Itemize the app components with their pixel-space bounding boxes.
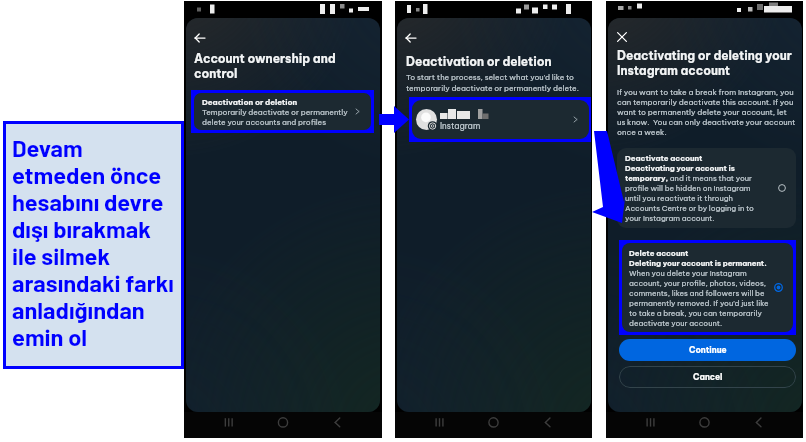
button[interactable]: Delete account	[622, 243, 793, 332]
staticText: Deactivating your account is temporary, …	[625, 163, 757, 225]
staticText: Deactivation or deletion	[406, 54, 552, 69]
staticText: Deleting your account is permanent. When…	[629, 258, 771, 332]
staticText: Continue	[689, 345, 727, 355]
staticText: Delete account	[629, 248, 689, 258]
button[interactable]: Continue	[619, 339, 796, 361]
staticText: Devam etmeden önce hesabını devre dışı b…	[12, 133, 174, 350]
staticText: Temporarily deactivate or permanently de…	[202, 107, 348, 127]
button[interactable]: Cancel	[619, 366, 796, 388]
button[interactable]: Deactivation or deletion	[194, 93, 371, 130]
button[interactable]: Deactivate account	[617, 148, 796, 228]
staticText: Deactivation or deletion	[202, 97, 298, 107]
staticText: Instagram	[440, 121, 481, 131]
other: Close	[616, 31, 628, 43]
staticText: To start the process, select what you'd …	[406, 72, 579, 93]
other: Back	[194, 32, 206, 44]
staticText: Deactivate account	[625, 153, 703, 163]
other: Back	[405, 32, 417, 44]
staticText: Account ownership and control	[194, 51, 336, 81]
staticText: If you want to take a break from Instagr…	[617, 87, 796, 137]
staticText: Cancel	[693, 372, 723, 382]
button[interactable]: Instagram	[412, 100, 589, 139]
staticText: Deactivating or deleting your Instagram …	[617, 48, 792, 78]
